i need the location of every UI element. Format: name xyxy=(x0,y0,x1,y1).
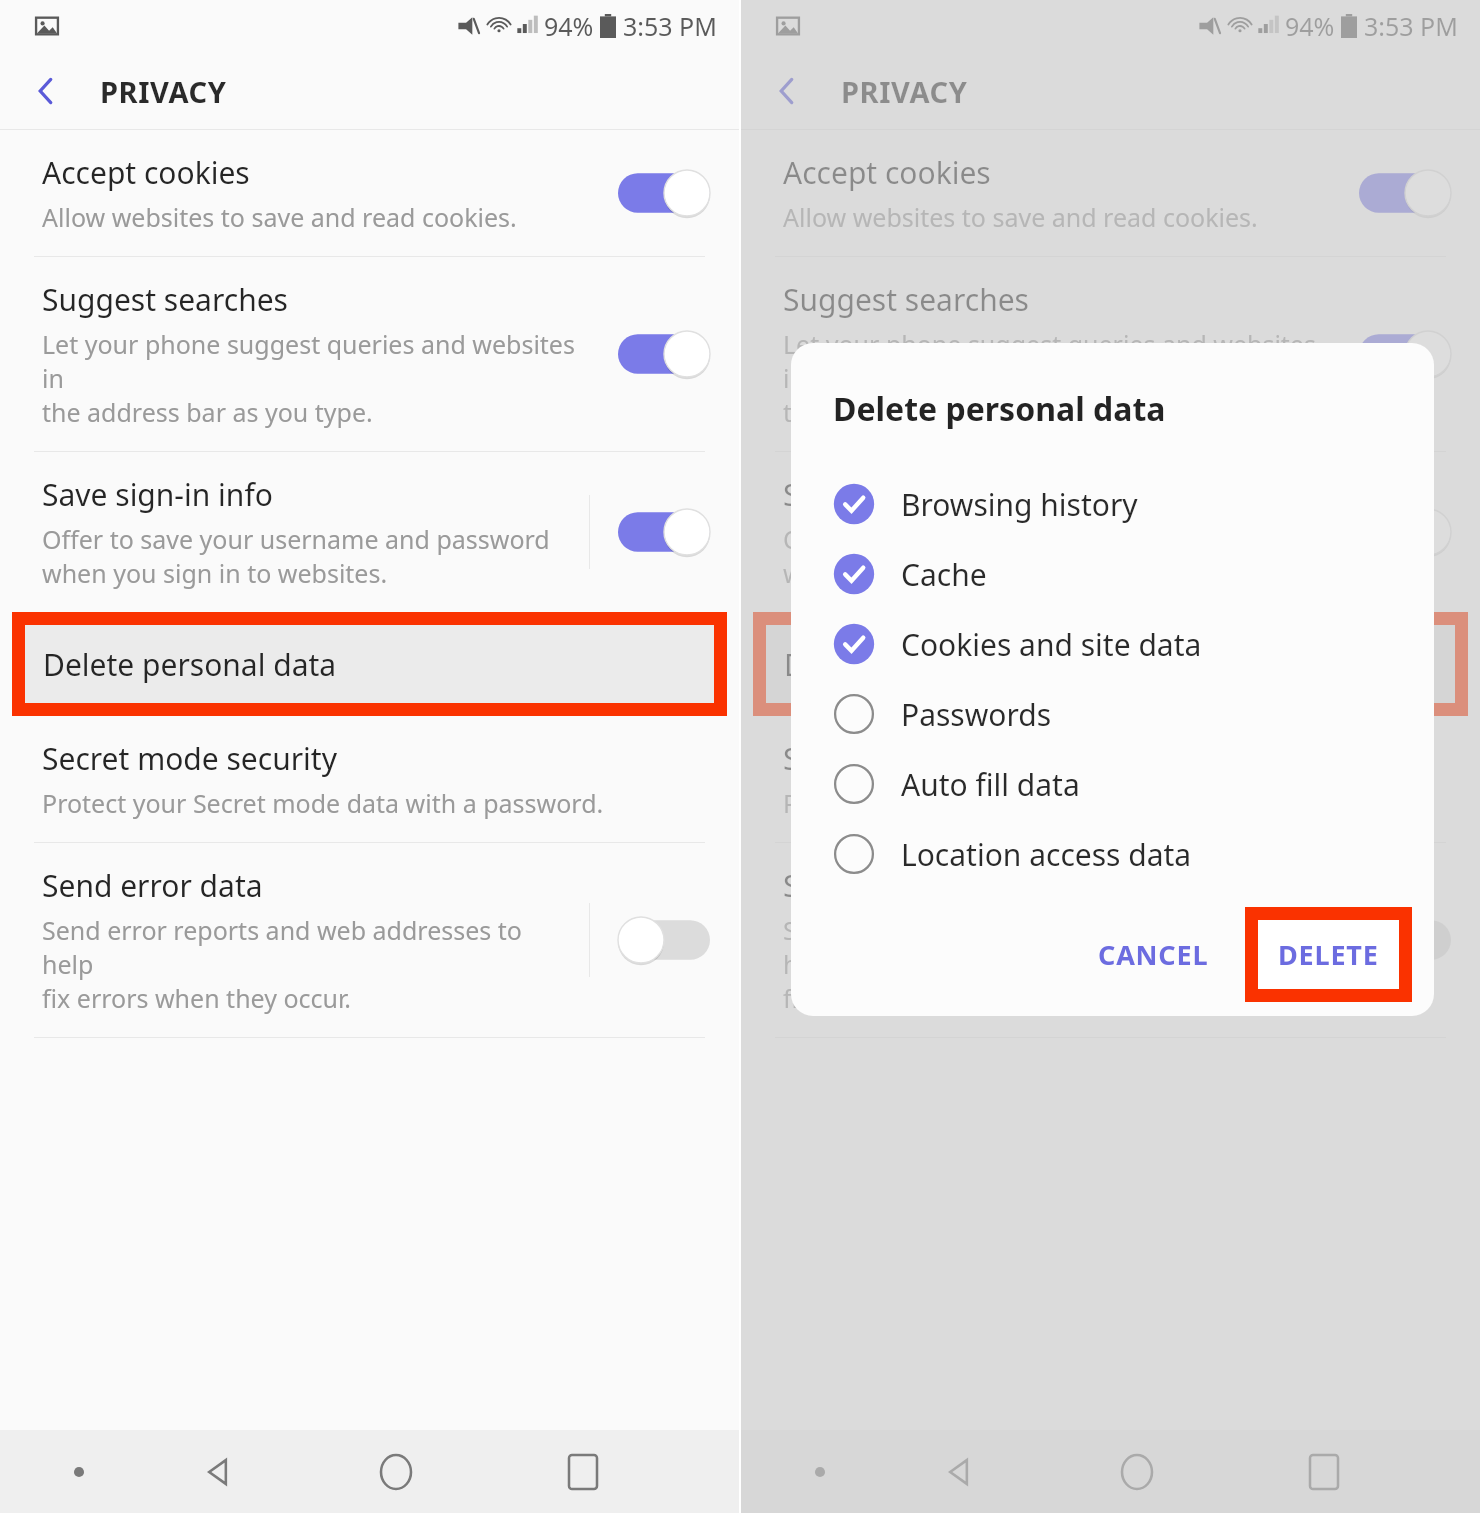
staticText: 94% xyxy=(544,9,594,43)
staticText: PRIVACY xyxy=(100,72,227,111)
button[interactable]: Recent apps xyxy=(1230,1430,1417,1513)
button[interactable]: Toggle off xyxy=(1359,917,1451,963)
staticText: Cache xyxy=(901,554,987,595)
button[interactable]: Recent apps xyxy=(489,1430,676,1513)
button[interactable]: Secret mode security xyxy=(0,716,739,842)
button[interactable]: Back xyxy=(873,1430,1043,1513)
staticText: Secret mode security xyxy=(42,738,337,779)
button[interactable]: Save sign-in info xyxy=(741,452,1480,612)
button[interactable]: Home xyxy=(302,1430,489,1513)
staticText: Secret mode security xyxy=(783,738,1078,779)
button[interactable]: Browsing history xyxy=(791,469,1434,539)
staticText: Save sign-in info xyxy=(42,474,273,515)
staticText: Passwords xyxy=(901,694,1052,735)
button[interactable]: Toggle on xyxy=(618,331,710,377)
button[interactable]: Toggle on xyxy=(618,509,710,555)
button[interactable]: Toggle on xyxy=(1359,509,1451,555)
button[interactable]: Delete personal data xyxy=(766,625,1455,703)
staticText: Send error reports and web addresses to … xyxy=(783,913,1318,1015)
button[interactable]: Send error data xyxy=(741,843,1480,1037)
button[interactable]: Back xyxy=(18,63,74,119)
staticText: Send error data xyxy=(783,865,1004,906)
staticText: Allow websites to save and read cookies. xyxy=(783,200,1258,234)
button[interactable]: Secret mode security xyxy=(741,716,1480,842)
staticText: Auto fill data xyxy=(901,764,1080,805)
staticText: 3:53 PM xyxy=(1364,9,1458,43)
staticText: CANCEL xyxy=(1098,936,1209,973)
staticText: Protect your Secret mode data with a pas… xyxy=(783,786,1345,820)
staticText: Accept cookies xyxy=(783,152,991,193)
button[interactable]: Auto fill data xyxy=(791,749,1434,819)
staticText: Save sign-in info xyxy=(783,474,1014,515)
button[interactable]: Toggle off xyxy=(618,917,710,963)
button[interactable]: Suggest searches xyxy=(0,257,739,451)
staticText: Send error reports and web addresses to … xyxy=(42,913,577,1015)
staticText: Cookies and site data xyxy=(901,624,1202,665)
staticText: PRIVACY xyxy=(841,72,968,111)
staticText: 94% xyxy=(1285,9,1335,43)
staticText: Suggest searches xyxy=(42,279,288,320)
button[interactable]: Cache xyxy=(791,539,1434,609)
button[interactable]: Home xyxy=(1043,1430,1230,1513)
button[interactable]: Save sign-in info xyxy=(0,452,739,612)
button[interactable]: Accept cookies xyxy=(741,130,1480,256)
staticText: Location access data xyxy=(901,834,1192,875)
button[interactable]: Cookies and site data xyxy=(791,609,1434,679)
button[interactable]: Suggest searches xyxy=(741,257,1480,451)
staticText: Delete personal data xyxy=(833,387,1166,431)
button[interactable]: Delete personal data xyxy=(25,625,714,703)
staticText: 3:53 PM xyxy=(623,9,717,43)
button[interactable]: Accept cookies xyxy=(0,130,739,256)
staticText: Delete personal data xyxy=(43,644,337,685)
staticText: Protect your Secret mode data with a pas… xyxy=(42,786,604,820)
staticText: Offer to save your username and password… xyxy=(42,522,550,590)
staticText: Suggest searches xyxy=(783,279,1029,320)
staticText: Offer to save your username and password… xyxy=(783,522,1291,590)
staticText: Let your phone suggest queries and websi… xyxy=(42,327,577,429)
staticText: Send error data xyxy=(42,865,263,906)
button[interactable]: Send error data xyxy=(0,843,739,1037)
button[interactable]: Toggle on xyxy=(1359,331,1451,377)
button[interactable]: Passwords xyxy=(791,679,1434,749)
button[interactable]: Toggle on xyxy=(1359,170,1451,216)
staticText: Delete personal data xyxy=(784,644,1078,685)
button[interactable]: Location access data xyxy=(791,819,1434,889)
button[interactable]: CANCEL xyxy=(1072,918,1235,991)
button[interactable]: Back xyxy=(132,1430,302,1513)
staticText: DELETE xyxy=(1278,936,1379,973)
staticText: Allow websites to save and read cookies. xyxy=(42,200,517,234)
button[interactable]: DELETE xyxy=(1258,920,1399,989)
staticText: Let your phone suggest queries and websi… xyxy=(783,327,1318,429)
button[interactable]: Back xyxy=(759,63,815,119)
staticText: Accept cookies xyxy=(42,152,250,193)
button[interactable]: Toggle on xyxy=(618,170,710,216)
staticText: Browsing history xyxy=(901,484,1138,525)
